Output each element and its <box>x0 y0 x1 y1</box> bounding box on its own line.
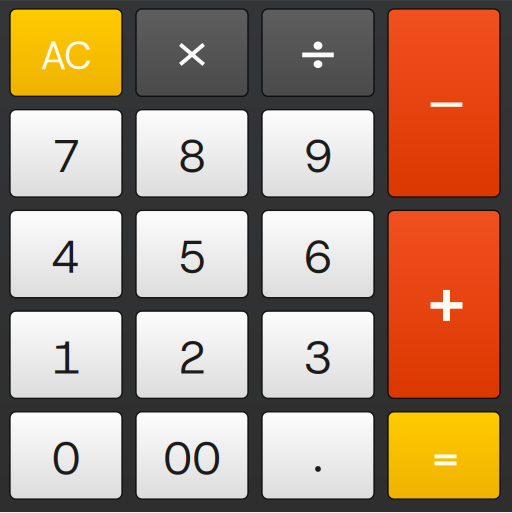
staticText: 6 <box>303 227 332 287</box>
staticText: 2 <box>177 328 206 388</box>
button[interactable]: 0 <box>10 412 122 499</box>
staticText: 4 <box>51 227 80 287</box>
button[interactable]: 8 <box>136 110 248 197</box>
staticText: 5 <box>177 227 206 287</box>
button[interactable]: 4 <box>10 210 122 298</box>
staticText: 8 <box>177 126 206 186</box>
button[interactable]: Divide <box>262 9 374 96</box>
button[interactable]: 2 <box>136 311 248 398</box>
button[interactable]: Multiply <box>136 9 248 96</box>
staticText: 3 <box>303 328 332 388</box>
button[interactable]: 6 <box>262 210 374 298</box>
staticText: 00 <box>163 428 221 488</box>
staticText: 9 <box>303 126 332 186</box>
button[interactable]: 9 <box>262 110 374 197</box>
button[interactable]: Minus <box>388 9 500 197</box>
staticText: AC <box>40 30 91 81</box>
button[interactable]: 1 <box>10 311 122 398</box>
button[interactable]: Decimal point <box>262 412 374 499</box>
button[interactable]: Plus <box>388 210 500 398</box>
button[interactable]: 5 <box>136 210 248 298</box>
staticText: 0 <box>51 428 80 488</box>
button[interactable]: 3 <box>262 311 374 398</box>
button[interactable]: Equals <box>388 412 500 499</box>
button[interactable]: 7 <box>10 110 122 197</box>
button[interactable]: 00 <box>136 412 248 499</box>
button[interactable]: AC <box>10 9 122 96</box>
staticText: 1 <box>51 328 80 388</box>
staticText: 7 <box>51 126 80 186</box>
